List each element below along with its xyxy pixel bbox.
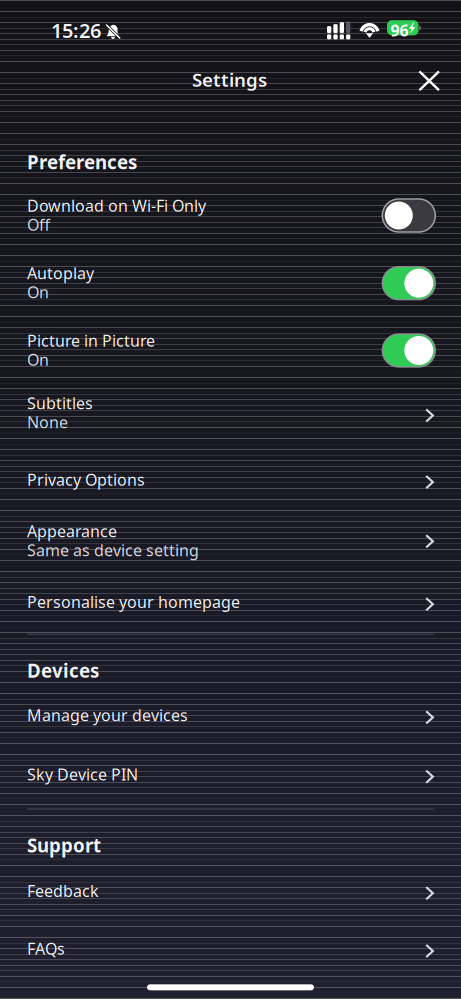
staticText: 15:26 bbox=[51, 17, 101, 44]
staticText: On bbox=[27, 281, 49, 303]
staticText: Off bbox=[27, 214, 50, 235]
staticText: None bbox=[27, 411, 68, 433]
staticText: Subtitles bbox=[27, 392, 93, 414]
staticText: Picture in Picture bbox=[27, 330, 155, 351]
button[interactable]: Manage your devices bbox=[0, 704, 461, 738]
button[interactable]: Appearance bbox=[0, 520, 461, 572]
staticText: Appearance bbox=[27, 520, 117, 542]
staticText: 96 bbox=[390, 20, 408, 41]
staticText: Same as device setting bbox=[27, 539, 199, 561]
staticText: Settings bbox=[192, 67, 267, 92]
staticText: Preferences bbox=[27, 150, 137, 174]
button[interactable]: Sky Device PIN bbox=[0, 764, 461, 798]
button[interactable]: Download on Wi-Fi Only bbox=[0, 195, 461, 247]
staticText: Support bbox=[27, 833, 101, 858]
staticText: FAQs bbox=[27, 938, 65, 959]
staticText: Privacy Options bbox=[27, 469, 145, 490]
button[interactable]: Close bbox=[407, 60, 451, 104]
button[interactable]: Feedback bbox=[0, 880, 461, 914]
staticText: Autoplay bbox=[27, 262, 94, 284]
button[interactable]: Subtitles bbox=[0, 392, 461, 444]
button[interactable]: Personalise your homepage bbox=[0, 591, 461, 625]
staticText: Feedback bbox=[27, 880, 99, 901]
staticText: Devices bbox=[27, 658, 99, 683]
staticText: Sky Device PIN bbox=[27, 764, 138, 785]
staticText: Manage your devices bbox=[27, 704, 188, 725]
button[interactable]: Privacy Options bbox=[0, 469, 461, 503]
button[interactable]: Autoplay bbox=[0, 262, 461, 314]
staticText: Personalise your homepage bbox=[27, 591, 240, 612]
staticText: Download on Wi-Fi Only bbox=[27, 195, 206, 216]
staticText: On bbox=[27, 349, 49, 370]
button[interactable]: FAQs bbox=[0, 938, 461, 972]
button[interactable]: Picture in Picture bbox=[0, 330, 461, 382]
